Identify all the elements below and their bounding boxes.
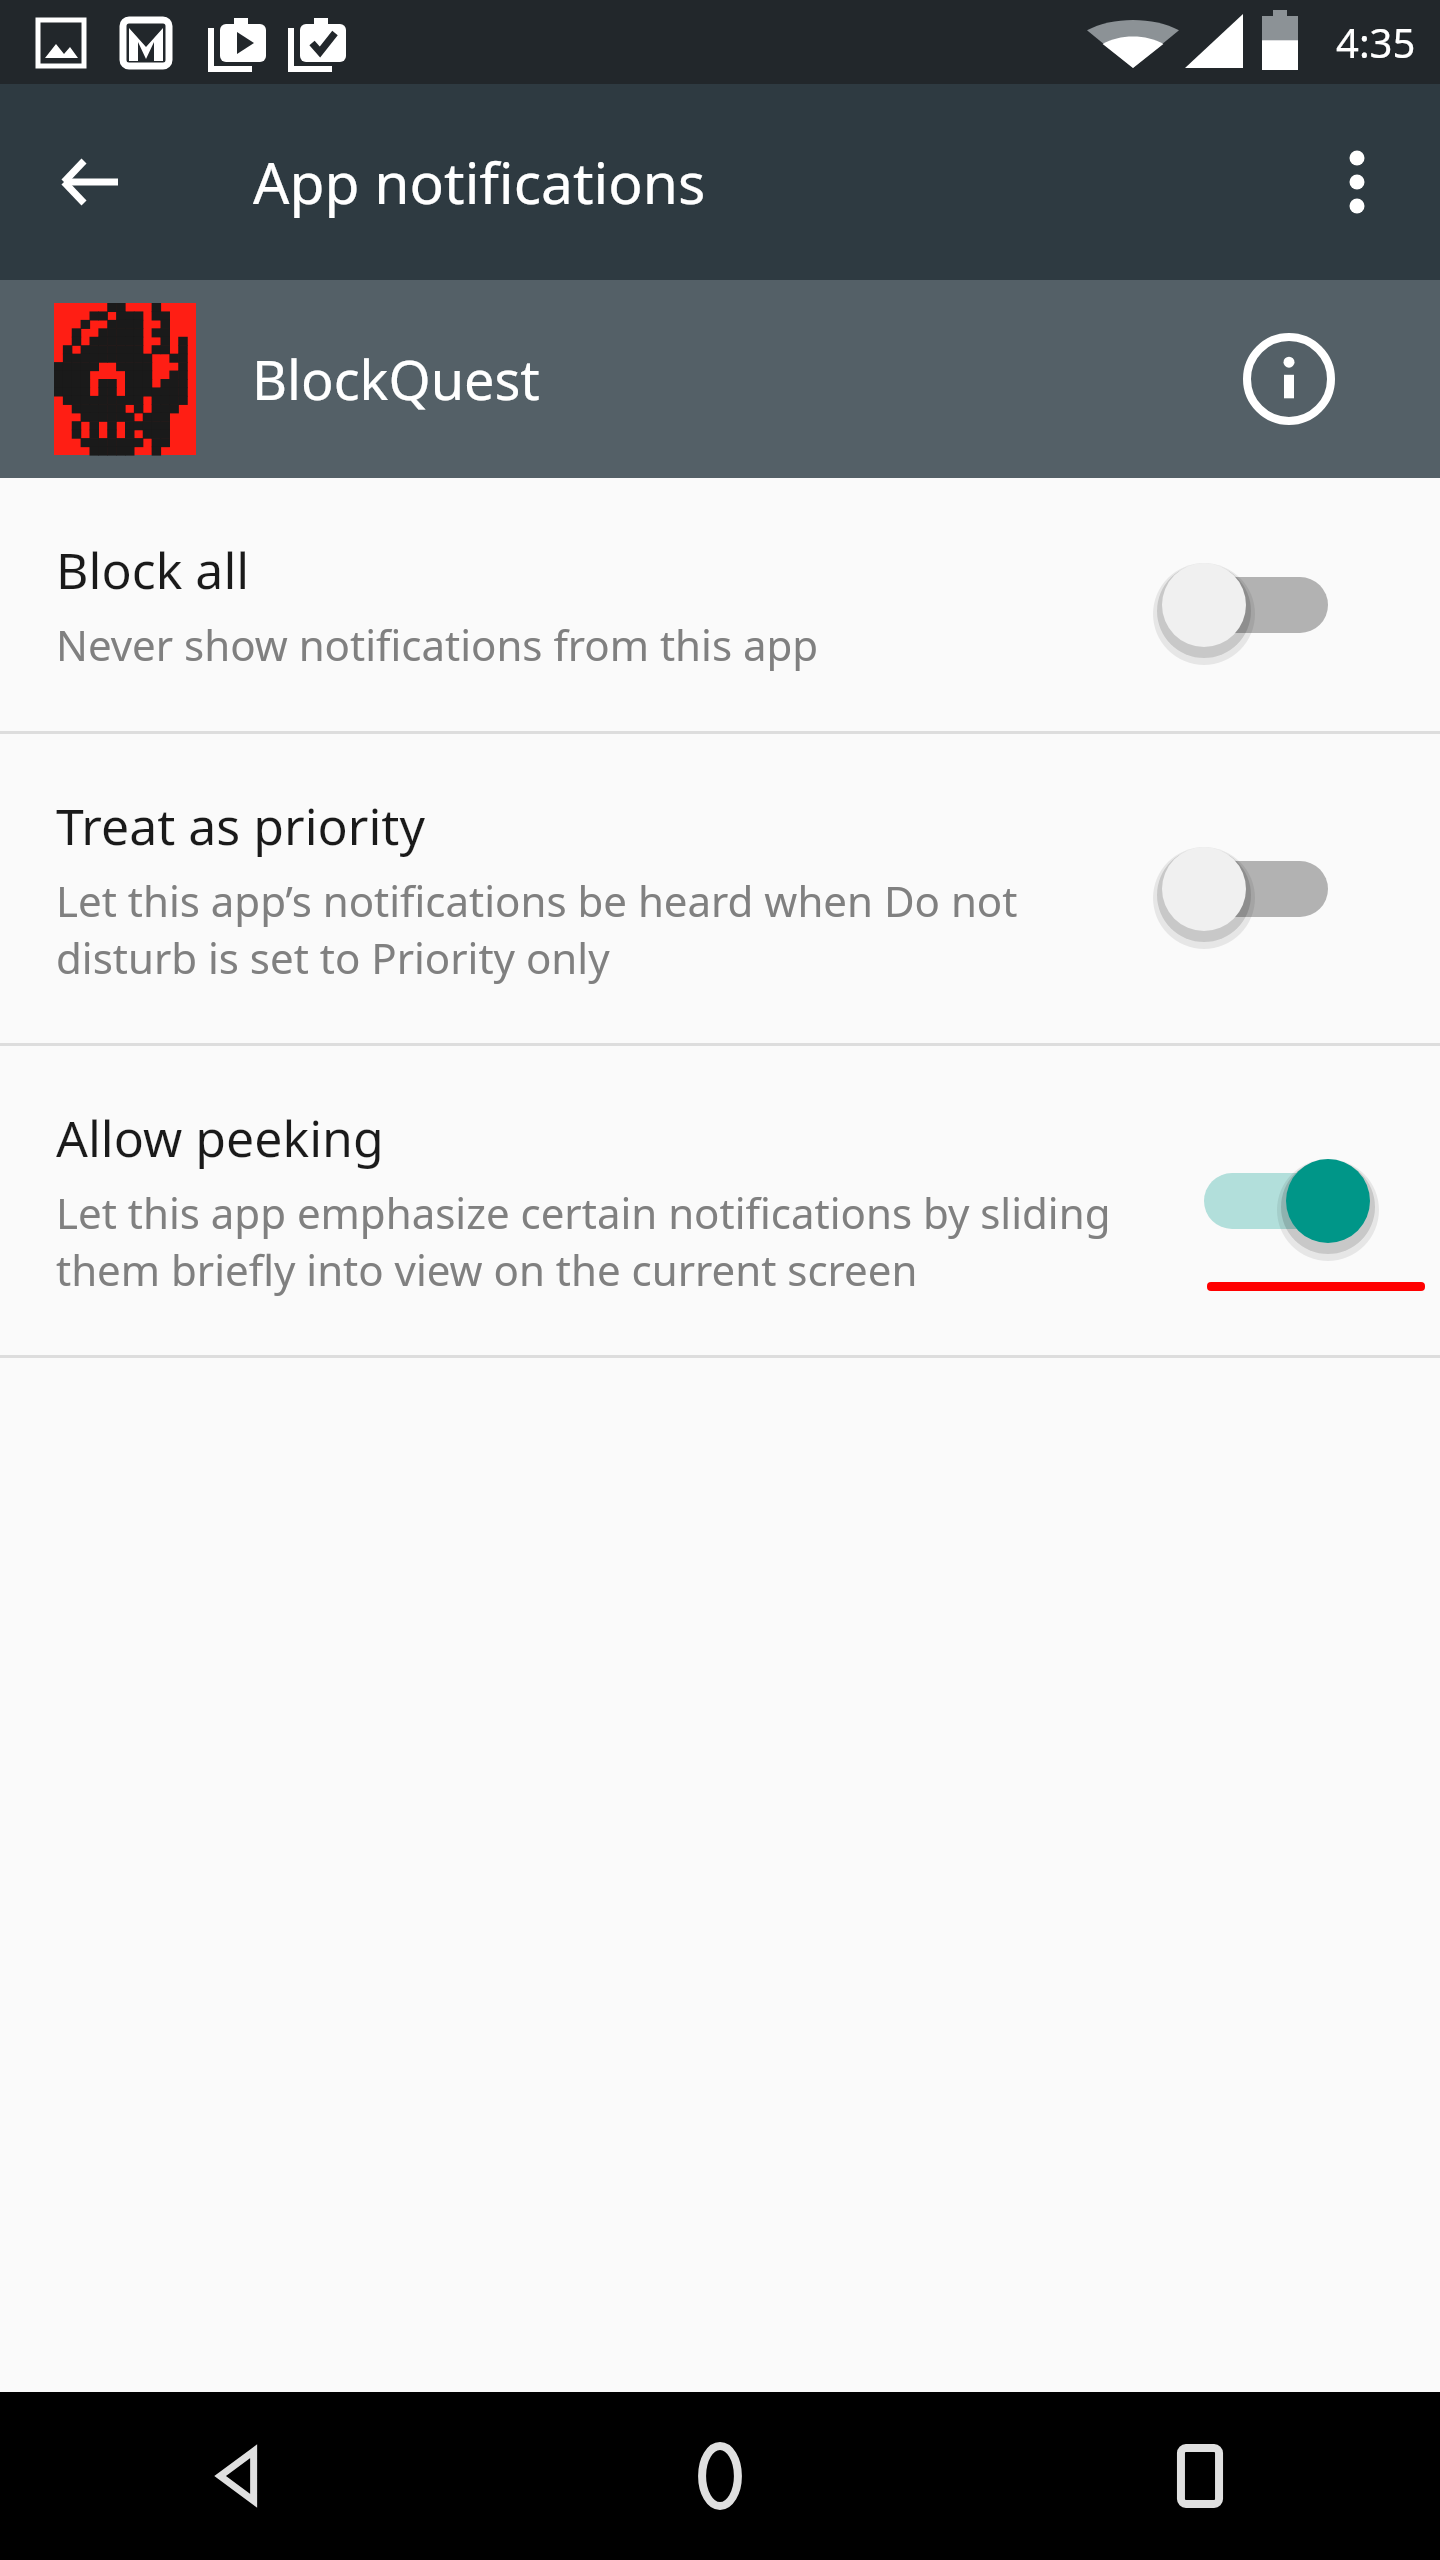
button[interactable]: Home bbox=[480, 2392, 960, 2560]
staticText: Treat as priority bbox=[56, 792, 425, 860]
button[interactable]: Block all bbox=[1160, 540, 1360, 670]
button[interactable]: Allow peeking bbox=[0, 1046, 1440, 1355]
button[interactable]: Navigate up bbox=[30, 122, 150, 242]
button[interactable]: Recent apps bbox=[960, 2392, 1440, 2560]
button[interactable]: Back bbox=[0, 2392, 480, 2560]
staticText: 4:35 bbox=[1336, 15, 1416, 69]
staticText: Let this app’s notifications be heard wh… bbox=[56, 872, 1136, 986]
staticText: Allow peeking bbox=[56, 1104, 384, 1172]
staticText: Never show notifications from this app bbox=[56, 616, 819, 673]
button[interactable]: Allow peeking bbox=[1160, 1136, 1360, 1266]
staticText: Let this app emphasize certain notificat… bbox=[56, 1184, 1136, 1298]
button[interactable]: App info bbox=[1234, 324, 1344, 434]
button[interactable]: Treat as priority bbox=[1160, 824, 1360, 954]
button[interactable]: Treat as priority bbox=[0, 734, 1440, 1043]
button[interactable]: More options bbox=[1302, 127, 1412, 237]
staticText: Block all bbox=[56, 536, 250, 604]
button[interactable]: Block all bbox=[0, 478, 1440, 731]
staticText: BlockQuest bbox=[252, 342, 540, 416]
staticText: App notifications bbox=[253, 143, 706, 221]
button[interactable]: BlockQuest bbox=[0, 280, 1440, 478]
